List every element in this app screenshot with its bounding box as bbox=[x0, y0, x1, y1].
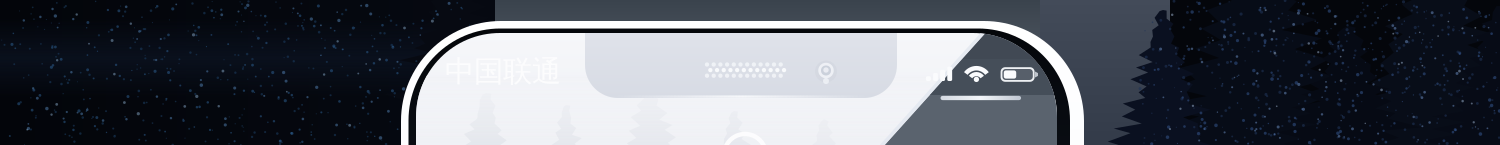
staticText: 中国联通 bbox=[445, 53, 561, 89]
